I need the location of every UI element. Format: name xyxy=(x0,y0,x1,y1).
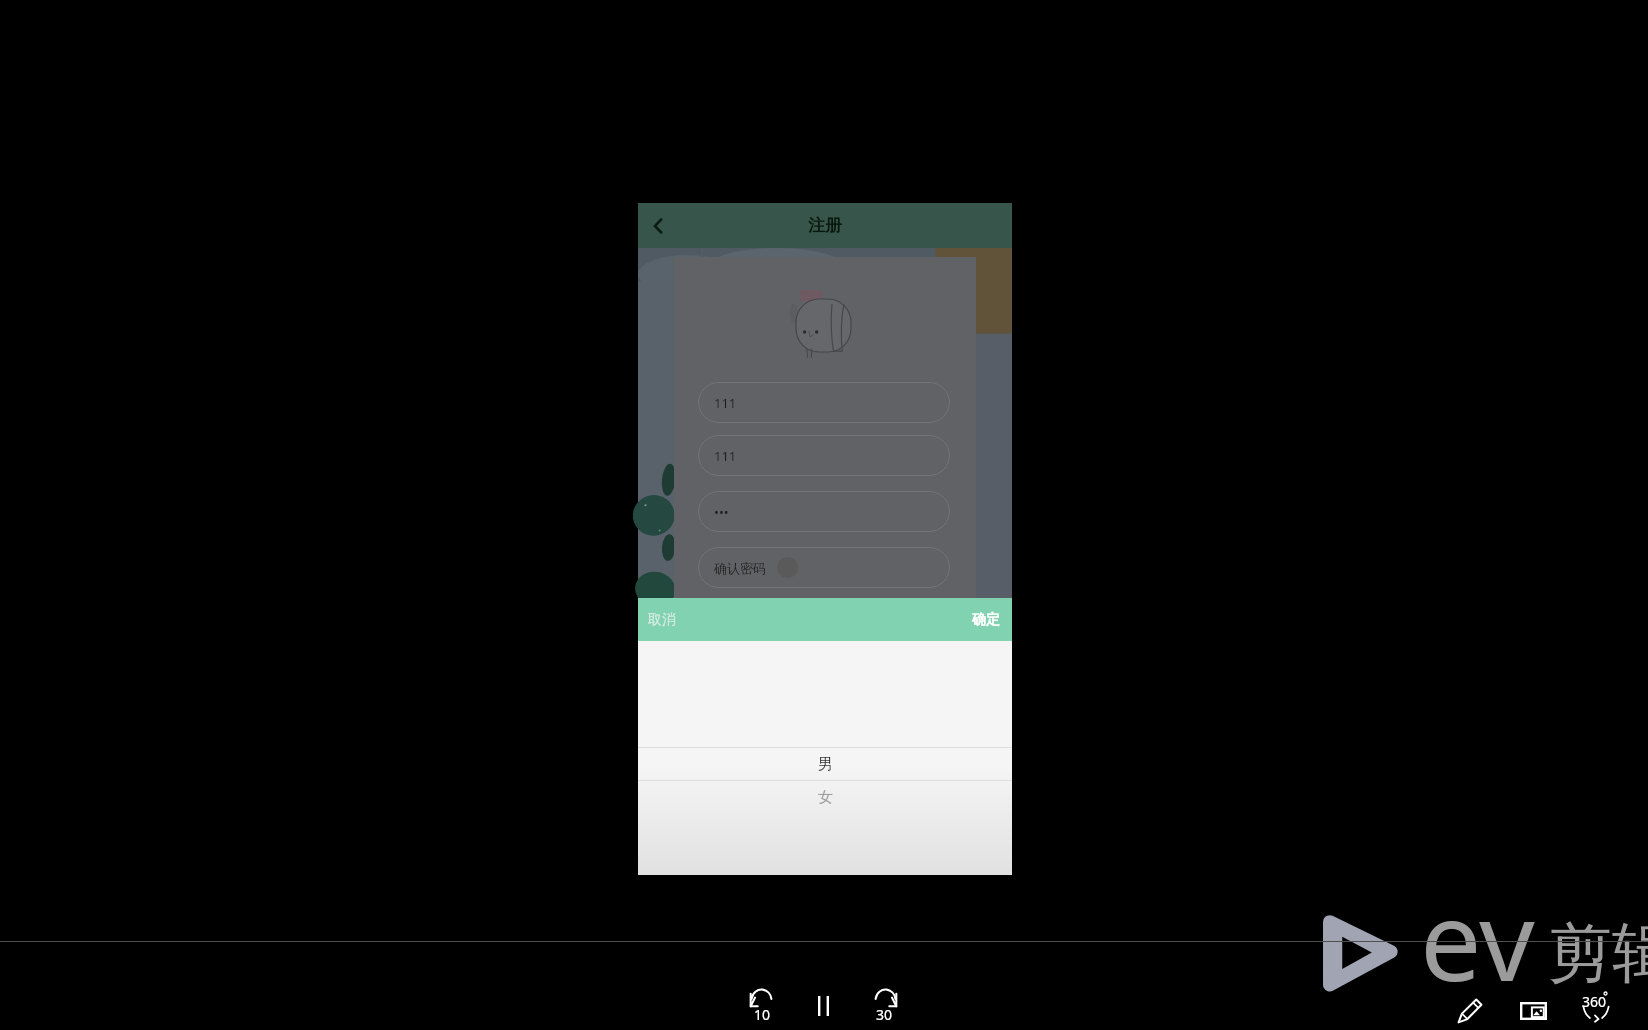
button[interactable]: Edit xyxy=(1447,988,1493,1030)
button[interactable]: Rewind 10 seconds xyxy=(738,983,784,1029)
staticText: 剪辑 xyxy=(1548,913,1648,994)
button[interactable]: 女 xyxy=(638,781,1012,813)
staticText: ••• xyxy=(714,503,729,521)
staticText: 30 xyxy=(876,1005,893,1024)
staticText: 确认密码 xyxy=(714,560,766,576)
button[interactable]: 111 xyxy=(698,435,950,476)
staticText: 111 xyxy=(714,394,737,412)
staticText: 111 xyxy=(714,447,737,465)
button[interactable]: Pause xyxy=(800,983,846,1029)
button[interactable]: 确定 xyxy=(960,600,1012,640)
staticText: 确定 xyxy=(972,611,1000,629)
button[interactable]: 确认密码 xyxy=(698,547,950,588)
staticText: 注册 xyxy=(808,215,842,236)
button[interactable]: Picture in picture xyxy=(1510,988,1556,1030)
staticText: 取消 xyxy=(648,611,676,629)
button[interactable]: Back xyxy=(638,206,678,246)
staticText: ev xyxy=(1420,864,1535,1012)
staticText: 360 xyxy=(1582,992,1607,1011)
staticText: 10 xyxy=(754,1005,771,1024)
staticText: 男 xyxy=(818,755,833,774)
button[interactable]: 取消 xyxy=(638,600,686,640)
button[interactable]: 男 xyxy=(638,748,1012,780)
staticText: 女 xyxy=(818,788,833,807)
button[interactable]: 360 degree view xyxy=(1573,988,1619,1030)
button[interactable]: 111 xyxy=(698,382,950,423)
button[interactable]: ••• xyxy=(698,491,950,532)
button[interactable]: Forward 30 seconds xyxy=(862,983,908,1029)
